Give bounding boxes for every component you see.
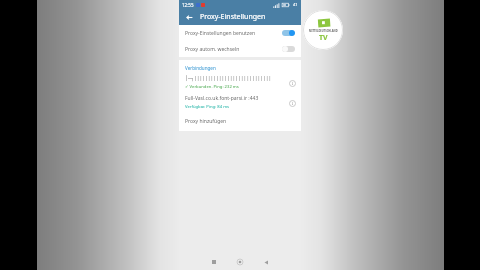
button[interactable]: Mitteldeutschland TV bbox=[303, 10, 343, 50]
button[interactable]: Proxy-Einstellungen benutzen bbox=[179, 25, 301, 41]
staticText: │─┐|||||||||||||||||||||||||||| bbox=[185, 75, 272, 82]
staticText: TV bbox=[319, 33, 328, 43]
staticText: Verbindungen bbox=[185, 65, 216, 71]
button[interactable]: Proxy autom. wechseln bbox=[179, 41, 301, 57]
button[interactable]: Info bbox=[287, 98, 297, 108]
staticText: MITTELDEUTSCHLAND bbox=[309, 29, 338, 33]
button[interactable]: Recent apps bbox=[207, 255, 221, 269]
staticText: Proxy autom. wechseln bbox=[185, 46, 282, 53]
button[interactable]: Proxy hinzufügen bbox=[179, 117, 301, 127]
staticText: 12:55 bbox=[182, 2, 194, 8]
button[interactable]: Back bbox=[179, 9, 301, 25]
button[interactable]: Toggle bbox=[282, 46, 295, 52]
button[interactable]: Back bbox=[183, 11, 195, 23]
staticText: Verfügbar. Ping: 84 ms bbox=[185, 104, 230, 110]
button[interactable]: Back bbox=[259, 255, 273, 269]
staticText: 41 bbox=[293, 2, 298, 7]
button[interactable]: Info bbox=[287, 78, 297, 88]
staticText: ✓ Verbunden. Ping: 232 ms bbox=[185, 84, 239, 90]
button[interactable]: Toggle bbox=[282, 30, 295, 36]
button[interactable]: Full-Vasl.co.uk.font-parsi.ir :443 bbox=[179, 95, 301, 110]
staticText: Proxy hinzufügen bbox=[185, 118, 227, 125]
staticText: Proxy-Einstellungen benutzen bbox=[185, 30, 282, 37]
button[interactable]: Home bbox=[233, 255, 247, 269]
staticText: Full-Vasl.co.uk.font-parsi.ir :443 bbox=[185, 95, 259, 102]
staticText: Proxy-Einstellungen bbox=[200, 12, 266, 22]
button[interactable]: │─┐|||||||||||||||||||||||||||| bbox=[179, 75, 301, 90]
